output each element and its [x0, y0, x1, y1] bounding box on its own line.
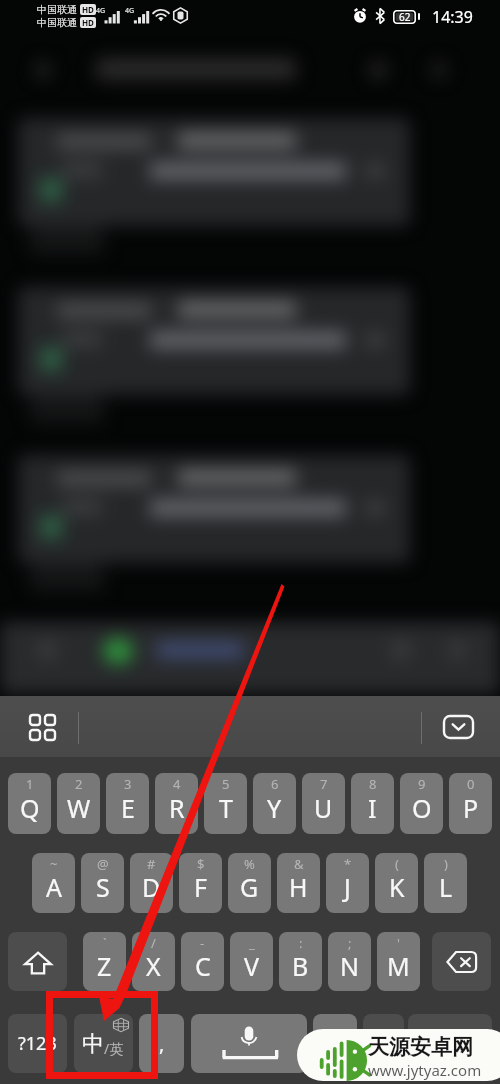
staticText: U [314, 791, 333, 825]
staticText: I [368, 791, 377, 825]
button[interactable]: ' [377, 932, 420, 991]
button[interactable]: Shift [8, 932, 67, 991]
staticText: 。 [327, 1034, 343, 1054]
staticText: * [344, 855, 352, 873]
staticText: 4G [125, 6, 135, 16]
staticText: 2 [75, 775, 83, 793]
staticText: Q [20, 791, 40, 825]
staticText: 4 [173, 775, 181, 793]
staticText: ( [395, 855, 399, 873]
button[interactable]: Comma [139, 1014, 184, 1073]
button[interactable]: ` [83, 932, 126, 991]
button[interactable]: 0 [449, 773, 492, 834]
button[interactable]: 5 [204, 773, 247, 834]
staticText: X [146, 949, 161, 983]
button[interactable]: Symbols [8, 1014, 67, 1073]
button[interactable]: - [181, 932, 224, 991]
staticText: @ [97, 855, 109, 873]
staticText: 62 [399, 10, 411, 24]
button[interactable]: Space [191, 1014, 307, 1073]
staticText: 8 [369, 775, 377, 793]
staticText: $ [197, 855, 205, 873]
staticText: ; [348, 934, 352, 952]
staticText: / [151, 934, 156, 952]
button[interactable]: ~ [32, 853, 75, 913]
staticText: 1 [26, 775, 34, 793]
button[interactable]: 6 [253, 773, 296, 834]
staticText: P [463, 791, 479, 825]
staticText: W [67, 791, 91, 825]
staticText: 中 [82, 1030, 104, 1058]
button[interactable]: / [132, 932, 175, 991]
button[interactable]: 3 [106, 773, 149, 834]
button[interactable]: _ [230, 932, 273, 991]
staticText: HD [82, 4, 94, 15]
staticText: 3 [124, 775, 132, 793]
button[interactable]: ( [375, 853, 418, 913]
staticText: 5 [222, 775, 230, 793]
button[interactable]: 2 [57, 773, 100, 834]
staticText: /英 [104, 1039, 124, 1058]
staticText: # [147, 855, 156, 873]
staticText: M [387, 949, 410, 983]
staticText: 中国联通 [37, 16, 77, 29]
staticText: J [344, 870, 351, 904]
staticText: E [121, 791, 135, 825]
button[interactable]: 中 [74, 1014, 133, 1073]
button[interactable]: : [279, 932, 322, 991]
staticText: A [46, 870, 62, 904]
staticText: www.jytyaz.com [368, 1060, 482, 1080]
staticText: F [194, 870, 207, 904]
button[interactable]: % [228, 853, 271, 913]
staticText: Y [267, 791, 282, 825]
staticText: 0 [467, 775, 475, 793]
staticText: L [439, 870, 453, 904]
button[interactable]: Backspace [432, 932, 491, 991]
staticText: 9 [418, 775, 426, 793]
staticText: D [142, 870, 161, 904]
button[interactable]: ) [424, 853, 467, 913]
staticText: G [240, 870, 259, 904]
button[interactable]: Enter [408, 1014, 492, 1073]
staticText: HD [82, 17, 94, 28]
staticText: & [294, 855, 304, 873]
button[interactable]: $ [179, 853, 222, 913]
staticText: : [299, 934, 303, 952]
staticText: 6 [271, 775, 279, 793]
staticText: S [96, 870, 110, 904]
button[interactable]: * [326, 853, 369, 913]
button[interactable]: ; [328, 932, 371, 991]
button[interactable]: 8 [351, 773, 394, 834]
staticText: - [200, 934, 205, 952]
staticText: , [159, 1030, 165, 1057]
staticText: % [244, 855, 255, 873]
button[interactable]: @ [81, 853, 124, 913]
button[interactable]: # [130, 853, 173, 913]
staticText: 4G [96, 6, 106, 16]
staticText: ` [103, 934, 107, 952]
staticText: 7 [320, 775, 328, 793]
button[interactable]: Hide keyboard [436, 705, 480, 749]
staticText: 14:39 [432, 6, 473, 28]
button[interactable]: 4 [155, 773, 198, 834]
button[interactable]: 7 [302, 773, 345, 834]
staticText: N [340, 949, 360, 983]
staticText: ) [444, 855, 448, 873]
staticText: C [195, 949, 211, 983]
staticText: V [244, 949, 260, 983]
button[interactable]: Emoji [363, 1014, 404, 1073]
button[interactable]: 1 [8, 773, 51, 834]
staticText: 中国联通 [37, 3, 77, 16]
staticText: Z [97, 949, 112, 983]
button[interactable]: 9 [400, 773, 443, 834]
button[interactable]: Period [313, 1014, 357, 1073]
staticText: R [169, 791, 185, 825]
staticText: ?123 [18, 1031, 57, 1056]
staticText: O [412, 791, 432, 825]
staticText: 天源安卓网 [368, 1034, 473, 1060]
button[interactable]: Keyboard panel [20, 705, 64, 749]
staticText: K [389, 870, 405, 904]
staticText: _ [249, 934, 255, 952]
button[interactable]: & [277, 853, 320, 913]
staticText: H [289, 870, 308, 904]
